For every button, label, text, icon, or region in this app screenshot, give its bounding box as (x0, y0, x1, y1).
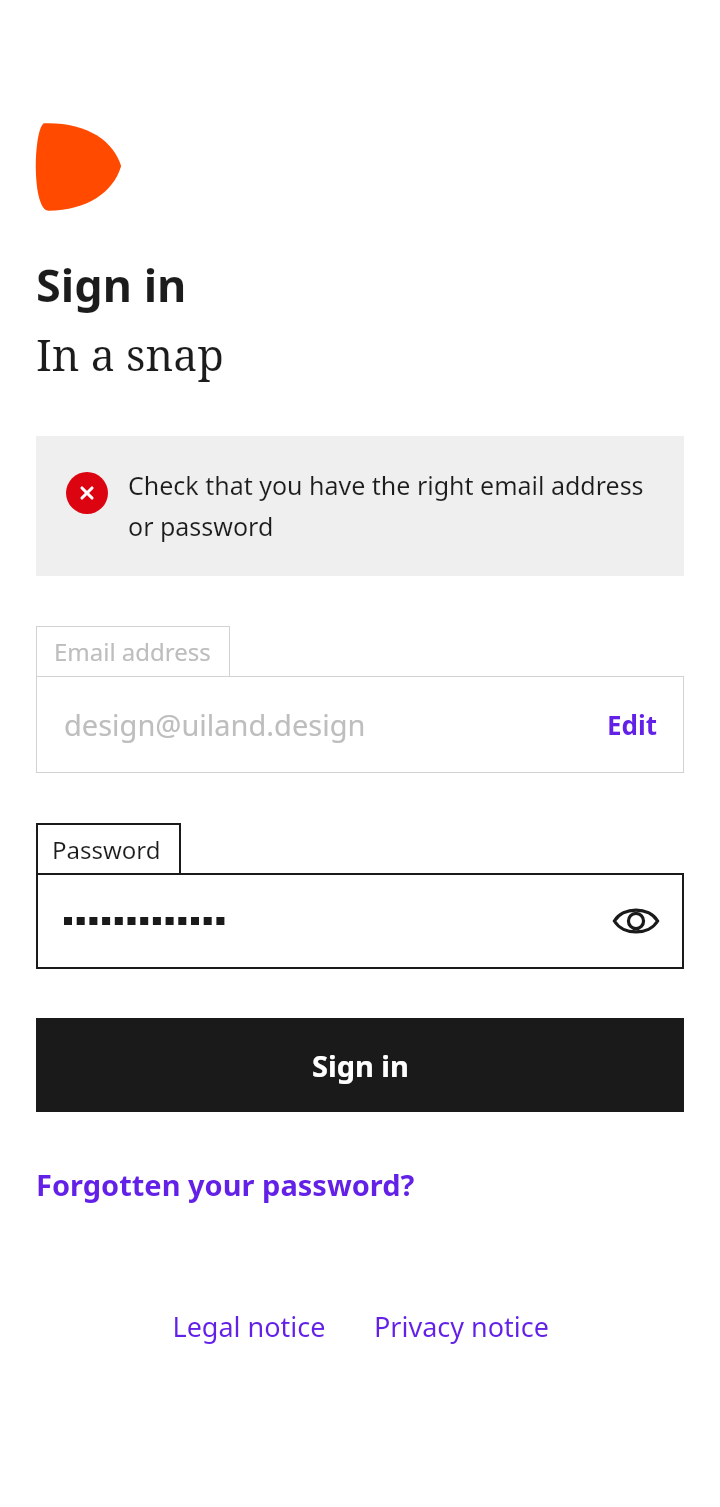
button[interactable]: Password (36, 823, 181, 875)
button[interactable]: Sign in (36, 1018, 684, 1112)
staticText: Forgotten your password? (36, 1165, 415, 1204)
staticText: In a snap (36, 325, 224, 384)
staticText: design@uiland.design (64, 705, 366, 744)
button[interactable]: design@uiland.design (36, 676, 684, 773)
button[interactable]: Legal notice (166, 1302, 332, 1351)
button[interactable]: Show password (36, 873, 684, 969)
other: Logo (36, 120, 122, 212)
button[interactable]: Edit (603, 699, 662, 750)
staticText: Check that you have the right email addr… (128, 468, 658, 544)
button[interactable]: Privacy notice (368, 1302, 555, 1351)
button[interactable]: Email address (36, 626, 230, 677)
staticText: Password (52, 833, 161, 866)
staticText: Sign in (36, 254, 187, 315)
staticText: Legal notice (172, 1308, 326, 1345)
staticText: Privacy notice (374, 1308, 549, 1345)
staticText: Edit (607, 707, 658, 742)
button[interactable]: Forgotten your password? (36, 1159, 415, 1210)
button[interactable]: Show password (610, 895, 662, 947)
staticText: Email address (54, 635, 211, 668)
staticText: Sign in (312, 1046, 409, 1085)
